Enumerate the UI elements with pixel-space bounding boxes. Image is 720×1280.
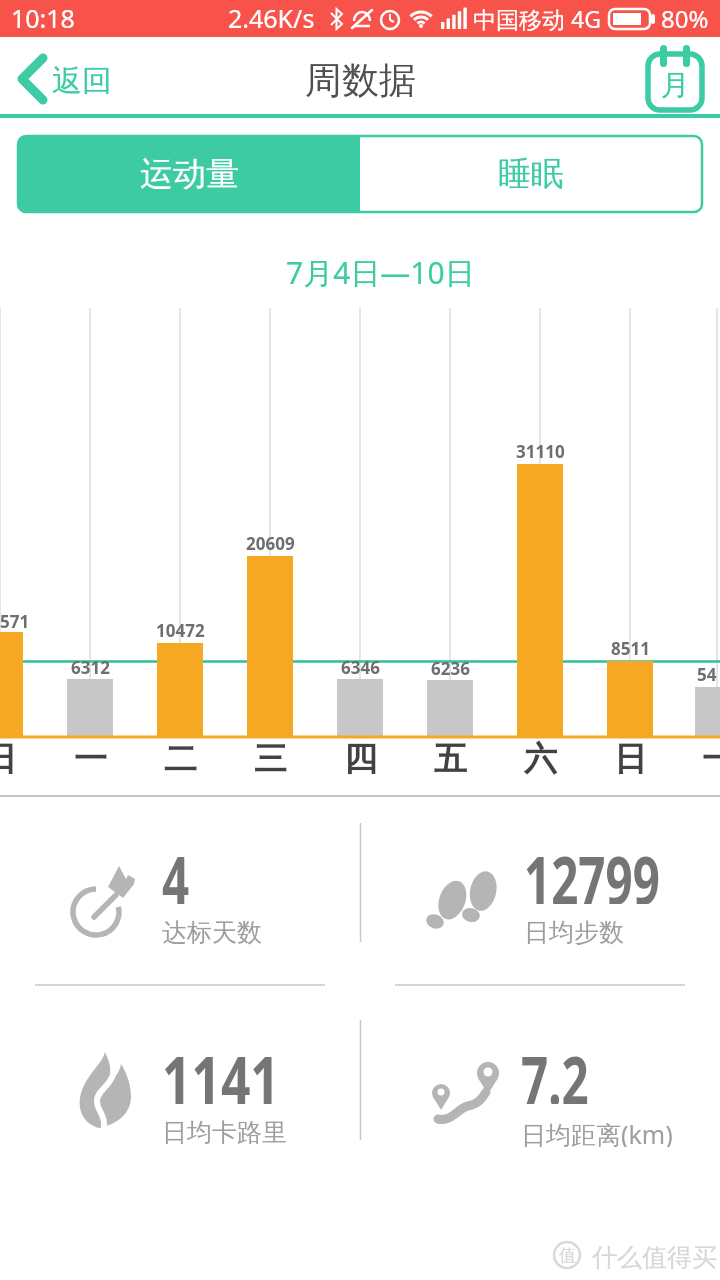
staticText: 6236	[431, 657, 470, 680]
button[interactable]	[0, 40, 120, 114]
staticText: 返回	[52, 62, 112, 100]
staticText: 月	[661, 67, 690, 103]
staticText: 4	[162, 834, 189, 904]
staticText: 日均卡路里	[162, 1117, 287, 1147]
staticText: 日	[0, 738, 17, 776]
staticText: 20609	[246, 532, 295, 555]
staticText: 7.2	[521, 1034, 589, 1104]
staticText: 80%	[661, 2, 709, 35]
button[interactable]	[360, 136, 702, 212]
staticText: 54	[697, 663, 717, 686]
staticText: 日	[614, 738, 647, 776]
staticText: 12799	[524, 834, 660, 904]
staticText: 8511	[611, 637, 650, 660]
staticText: 日均步数	[524, 917, 624, 947]
staticText: 10:18	[11, 1, 75, 35]
staticText: 睡眠	[498, 153, 564, 195]
staticText: 运动量	[140, 153, 239, 195]
staticText: 三	[254, 738, 287, 776]
staticText: 值	[559, 1245, 576, 1266]
staticText: 什么值得买	[592, 1242, 717, 1270]
staticText: 6312	[71, 656, 110, 679]
staticText: 四	[344, 738, 377, 776]
staticText: 6346	[341, 656, 380, 679]
staticText: 一	[74, 738, 107, 776]
staticText: 7月4日—10日	[286, 252, 475, 293]
staticText: 571	[0, 610, 30, 633]
staticText: 二	[164, 738, 197, 776]
staticText: 1141	[162, 1034, 281, 1104]
staticText: 周数据	[305, 57, 416, 104]
staticText: 31110	[516, 440, 565, 463]
staticText: 中国移动 4G	[473, 3, 601, 34]
staticText: 2.46K/s	[228, 1, 315, 35]
staticText: 六	[524, 738, 557, 776]
staticText: 一	[702, 738, 720, 776]
staticText: 日均距离(km)	[521, 1117, 673, 1147]
button[interactable]	[635, 40, 715, 114]
staticText: 达标天数	[162, 917, 262, 947]
staticText: 五	[434, 738, 467, 776]
button[interactable]	[18, 136, 360, 212]
staticText: 10472	[156, 619, 205, 642]
